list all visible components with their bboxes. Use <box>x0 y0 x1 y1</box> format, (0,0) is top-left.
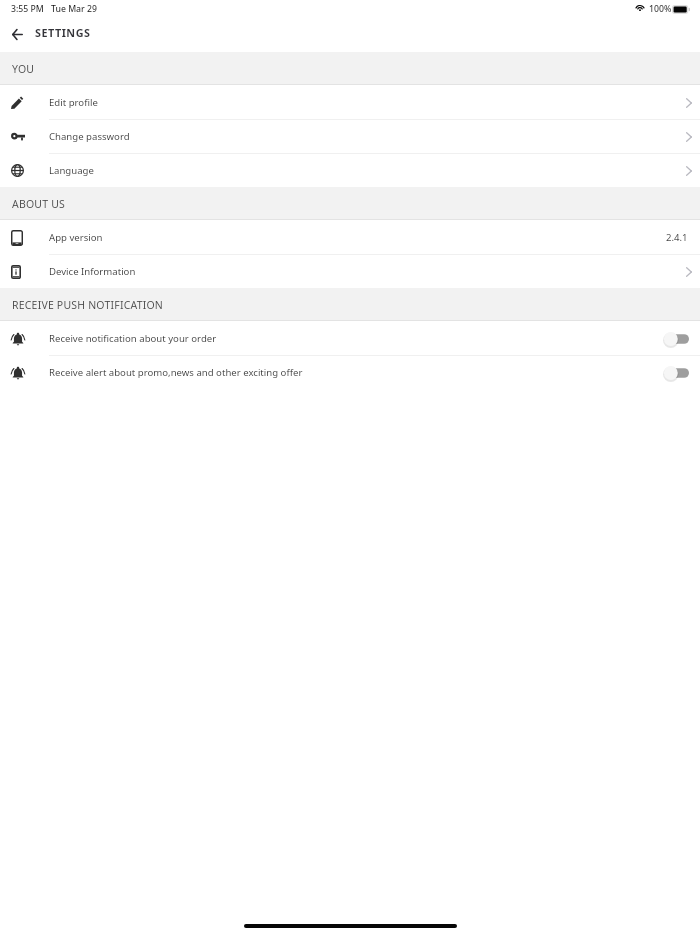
staticText: 100% <box>649 3 672 15</box>
staticText: Change password <box>49 130 130 143</box>
staticText: 2.4.1 <box>666 231 688 244</box>
staticText: RECEIVE PUSH NOTIFICATION <box>12 298 164 312</box>
staticText: Edit profile <box>49 96 98 109</box>
button[interactable]: Edit profile <box>0 86 700 119</box>
staticText: Tue Mar 29 <box>51 3 97 15</box>
staticText: Receive notification about your order <box>49 332 217 345</box>
staticText: YOU <box>12 62 35 76</box>
staticText: Language <box>49 164 94 177</box>
staticText: ABOUT US <box>12 197 66 211</box>
button[interactable]: Toggle <box>663 365 689 381</box>
button[interactable]: Change password <box>0 120 700 153</box>
button[interactable]: Device Information <box>0 255 700 288</box>
staticText: 3:55 PM <box>11 3 44 15</box>
button[interactable]: Back <box>4 21 30 47</box>
button[interactable]: Language <box>0 154 700 187</box>
button[interactable]: Receive alert about promo,news and other… <box>0 356 700 389</box>
staticText: SETTINGS <box>35 25 91 40</box>
staticText: Receive alert about promo,news and other… <box>49 366 303 379</box>
button[interactable]: App version <box>0 221 700 254</box>
staticText: App version <box>49 231 103 244</box>
button[interactable]: Receive notification about your order <box>0 322 700 355</box>
button[interactable]: Toggle <box>663 331 689 347</box>
staticText: Device Information <box>49 265 136 278</box>
